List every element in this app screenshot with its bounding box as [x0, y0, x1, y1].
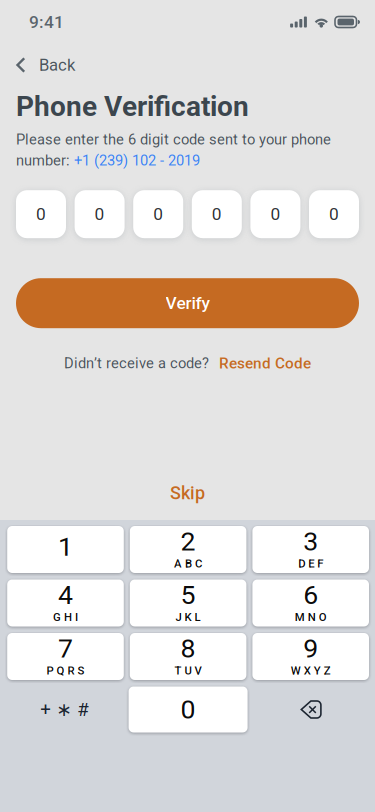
- staticText: A B C: [174, 557, 202, 570]
- staticText: 0: [329, 204, 339, 224]
- staticText: 7: [58, 633, 73, 664]
- button[interactable]: 3: [252, 526, 369, 573]
- button[interactable]: 0: [309, 190, 359, 238]
- staticText: 0: [181, 694, 196, 725]
- staticText: 1: [58, 531, 73, 562]
- button[interactable]: 8: [130, 633, 246, 680]
- button[interactable]: 2: [130, 526, 246, 573]
- staticText: 0: [153, 204, 163, 224]
- staticText: 6: [303, 579, 318, 610]
- staticText: 0: [212, 204, 222, 224]
- staticText: M N O: [295, 610, 327, 624]
- button[interactable]: 9: [252, 633, 369, 680]
- staticText: 8: [181, 633, 196, 664]
- staticText: Skip: [170, 482, 205, 504]
- button[interactable]: Resend Code: [219, 354, 311, 372]
- staticText: 4: [58, 579, 73, 610]
- staticText: Phone Verification: [16, 90, 249, 123]
- staticText: Verify: [165, 293, 209, 313]
- button[interactable]: Verify: [16, 278, 359, 328]
- staticText: Didn’t receive a code?: [64, 355, 209, 372]
- staticText: 5: [181, 579, 196, 610]
- staticText: + ∗ #: [40, 699, 88, 720]
- staticText: 9: [303, 633, 318, 664]
- button[interactable]: +1 (239) 102 - 2019: [74, 152, 200, 169]
- staticText: G H I: [53, 610, 78, 624]
- staticText: Back: [39, 55, 75, 75]
- button[interactable]: Skip: [156, 480, 219, 506]
- button[interactable]: 1: [7, 526, 124, 573]
- staticText: J K L: [176, 610, 201, 624]
- staticText: 3: [303, 526, 318, 557]
- button[interactable]: 0: [250, 190, 300, 238]
- button[interactable]: 7: [7, 633, 124, 680]
- staticText: +1 (239) 102 - 2019: [74, 152, 200, 169]
- staticText: 9:41: [29, 12, 64, 32]
- button[interactable]: 4: [7, 579, 124, 626]
- staticText: Resend Code: [219, 354, 311, 372]
- button[interactable]: Back: [0, 48, 375, 82]
- button[interactable]: 0: [133, 190, 183, 238]
- button[interactable]: 0: [16, 190, 66, 238]
- button[interactable]: Delete: [254, 686, 370, 732]
- staticText: 0: [270, 204, 280, 224]
- button[interactable]: 6: [252, 579, 369, 626]
- staticText: number:: [16, 152, 74, 169]
- staticText: D E F: [298, 557, 323, 570]
- button[interactable]: 0: [129, 686, 248, 732]
- button[interactable]: Symbols: [6, 686, 123, 732]
- staticText: P Q R S: [46, 664, 84, 677]
- button[interactable]: 0: [75, 190, 125, 238]
- staticText: 2: [181, 526, 196, 557]
- staticText: 0: [95, 204, 105, 224]
- staticText: Please enter the 6 digit code sent to yo…: [16, 131, 331, 148]
- staticText: T U V: [175, 664, 202, 677]
- staticText: W X Y Z: [291, 664, 331, 677]
- button[interactable]: 0: [192, 190, 242, 238]
- button[interactable]: 5: [130, 579, 246, 626]
- staticText: 0: [36, 204, 46, 224]
